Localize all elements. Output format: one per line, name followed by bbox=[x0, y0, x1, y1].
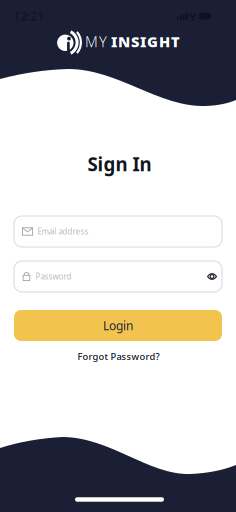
staticText: Sign In bbox=[87, 152, 151, 176]
staticText: 12:21 bbox=[13, 8, 44, 24]
button[interactable]: Password bbox=[14, 261, 222, 292]
staticText: Forgot Password? bbox=[77, 350, 159, 363]
staticText: M Y bbox=[85, 32, 107, 51]
staticText: Email address bbox=[37, 226, 88, 237]
staticText: I N S I G H T bbox=[111, 32, 180, 51]
button[interactable]: Email address bbox=[14, 216, 222, 247]
button[interactable]: Forgot Password? bbox=[77, 350, 159, 363]
staticText: Password bbox=[35, 271, 71, 282]
staticText: Login bbox=[103, 317, 133, 333]
button[interactable]: Show password bbox=[204, 268, 220, 285]
button[interactable]: Login bbox=[14, 310, 222, 341]
